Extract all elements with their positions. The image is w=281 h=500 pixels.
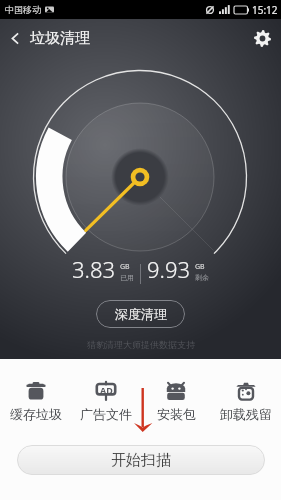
button[interactable]: 安装包 — [141, 381, 211, 422]
staticText: 猎豹清理大师提供数据支持 — [87, 339, 195, 350]
button[interactable]: Back — [0, 19, 30, 57]
staticText: 安装包 — [157, 406, 196, 422]
staticText: 3.83 — [72, 254, 116, 284]
staticText: 深度清理 — [115, 306, 167, 322]
staticText: GB — [195, 262, 205, 272]
button[interactable]: 深度清理 — [96, 300, 185, 328]
staticText: 广告文件 — [80, 406, 132, 422]
staticText: 开始扫描 — [111, 451, 171, 470]
staticText: 剩余 — [195, 273, 209, 282]
button[interactable]: Settings — [243, 19, 281, 57]
button[interactable]: 卸载残留 — [211, 381, 281, 422]
staticText: 中国移动 — [5, 4, 41, 15]
button[interactable]: 开始扫描 — [17, 445, 265, 475]
staticText: 垃圾清理 — [30, 29, 90, 48]
staticText: 卸载残留 — [220, 406, 272, 422]
staticText: 9.93 — [147, 254, 191, 284]
staticText: GB — [120, 262, 130, 272]
staticText: 缓存垃圾 — [10, 406, 62, 422]
button[interactable]: 缓存垃圾 — [0, 381, 71, 422]
staticText: AD — [100, 384, 113, 396]
staticText: 已用 — [120, 273, 134, 282]
staticText: 15:12 — [252, 3, 278, 17]
button[interactable]: AD — [71, 381, 141, 422]
